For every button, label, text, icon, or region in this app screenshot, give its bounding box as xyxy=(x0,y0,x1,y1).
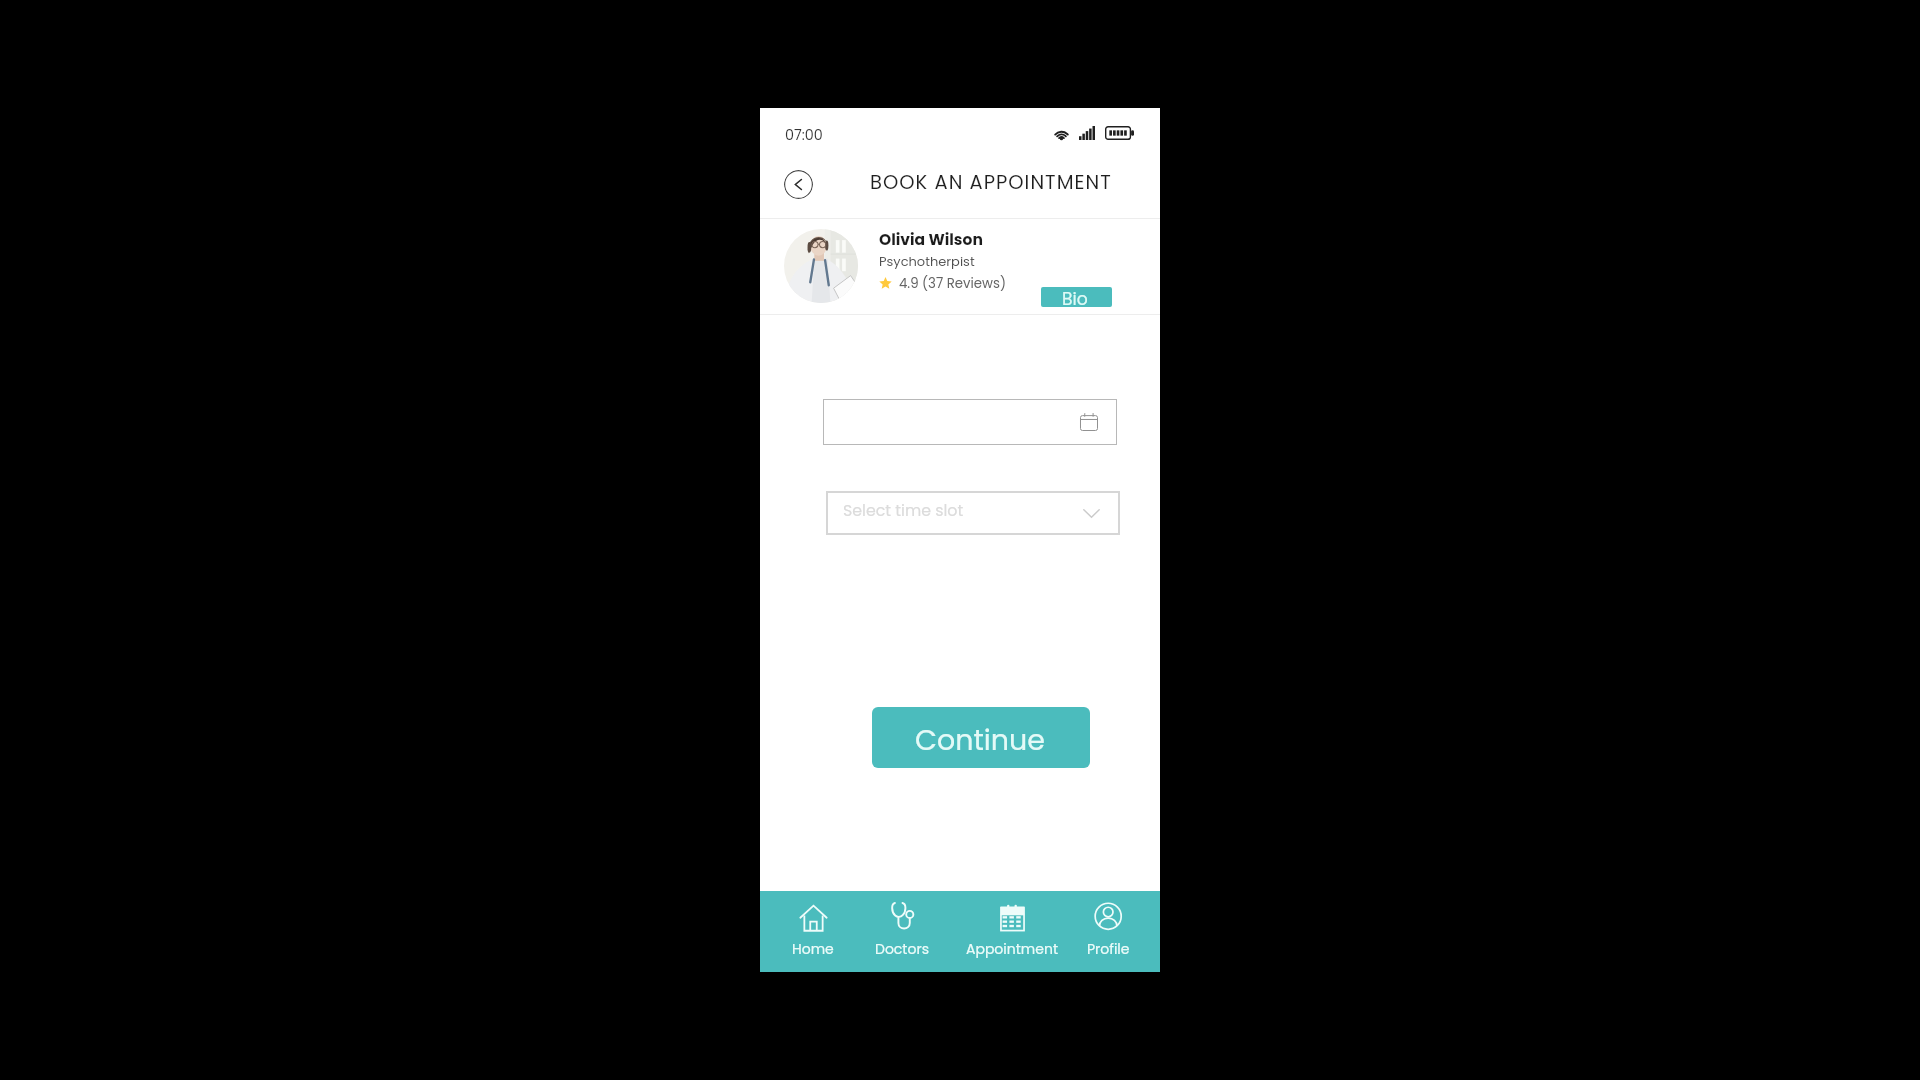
button[interactable]: Home xyxy=(760,891,860,972)
staticText: Olivia Wilson xyxy=(879,229,983,251)
staticText: 4.9 (37 Reviews) xyxy=(899,274,1006,293)
button[interactable]: Appointment xyxy=(960,891,1060,972)
button[interactable]: Pick a date xyxy=(823,399,1117,445)
button[interactable]: Bio xyxy=(1041,287,1112,307)
staticText: Psychotherpist xyxy=(879,252,975,270)
staticText: Appointment xyxy=(966,939,1058,959)
staticText: Home xyxy=(792,939,834,959)
staticText: Bio xyxy=(1062,287,1088,307)
button[interactable]: Select time slot xyxy=(826,491,1120,535)
staticText: Doctors xyxy=(875,939,929,959)
button[interactable]: Continue xyxy=(872,707,1090,768)
staticText: Select time slot xyxy=(843,499,964,521)
button[interactable]: Profile xyxy=(1060,891,1160,972)
button[interactable]: Back xyxy=(784,170,813,199)
staticText: Profile xyxy=(1087,939,1130,959)
staticText: BOOK AN APPOINTMENT xyxy=(870,169,1112,196)
staticText: 07:00 xyxy=(785,125,823,145)
button[interactable]: Olivia Wilson xyxy=(760,218,1160,314)
staticText: Continue xyxy=(915,720,1046,760)
button[interactable]: Doctors xyxy=(860,891,960,972)
